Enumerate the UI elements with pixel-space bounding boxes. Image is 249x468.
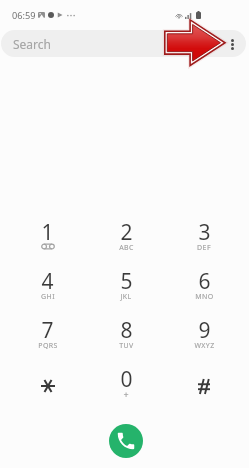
staticText: DEF [197,243,211,253]
button[interactable]: 3 [165,210,243,259]
staticText: Search [13,36,51,52]
staticText: 5 [120,267,133,296]
staticText: 9 [198,316,211,345]
staticText: 2 [120,218,133,247]
staticText: JKL [120,292,132,302]
staticText: 7 [41,316,54,345]
button[interactable]: Search [1,30,246,57]
staticText: PQRS [38,341,58,351]
staticText: 6 [198,267,211,296]
staticText: WXYZ [194,341,215,351]
staticText: GHI [41,292,55,302]
button[interactable] [8,357,87,406]
button[interactable]: 9 [165,308,243,357]
button[interactable]: 8 [87,308,165,357]
button[interactable]: Call [109,424,143,458]
staticText: TUV [119,341,134,351]
staticText: MNO [195,292,214,302]
staticText: 4 [41,267,54,296]
button[interactable]: 0 [87,357,165,406]
button[interactable]: 6 [165,259,243,308]
button[interactable]: 1 [8,210,87,259]
button[interactable]: 5 [87,259,165,308]
staticText: 0 [120,365,133,394]
button[interactable]: 4 [8,259,87,308]
button[interactable]: More options [219,31,245,57]
staticText: 06:59 [12,9,36,22]
button[interactable]: 7 [8,308,87,357]
staticText: ABC [119,243,134,253]
staticText: 3 [198,218,211,247]
staticText: 1 [41,218,54,247]
button[interactable]: 2 [87,210,165,259]
button[interactable] [165,357,243,406]
staticText: + [123,388,129,400]
staticText: 8 [120,316,133,345]
